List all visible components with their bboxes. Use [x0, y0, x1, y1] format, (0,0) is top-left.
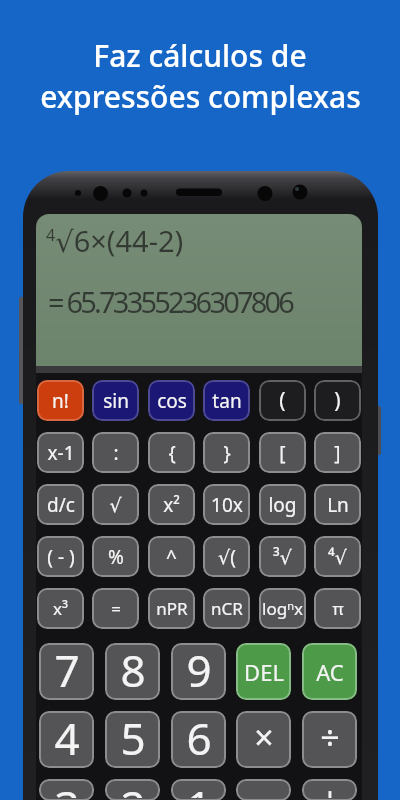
staticText: nCR: [211, 597, 243, 620]
staticText: {: [168, 440, 176, 466]
button[interactable]: {: [148, 432, 195, 473]
staticText: [: [279, 440, 286, 466]
staticText: 7: [54, 643, 80, 697]
staticText: AC: [316, 657, 344, 687]
staticText: :: [113, 440, 119, 466]
button[interactable]: ]: [314, 432, 361, 473]
staticText: 8: [120, 643, 146, 697]
button[interactable]: tan: [203, 380, 250, 421]
staticText: %: [108, 544, 124, 570]
staticText: DEL: [244, 657, 284, 687]
button[interactable]: 7: [39, 643, 94, 700]
button[interactable]: sin: [92, 380, 139, 421]
staticText: ×: [254, 714, 274, 760]
button[interactable]: +: [302, 779, 357, 800]
staticText: 3: [54, 779, 80, 798]
staticText: 5: [120, 711, 146, 765]
staticText: 1: [186, 779, 212, 798]
button[interactable]: [: [259, 432, 306, 473]
staticText: x²: [163, 492, 180, 518]
button[interactable]: AC: [302, 643, 357, 700]
button[interactable]: x²: [148, 484, 195, 525]
button[interactable]: 3: [39, 779, 94, 800]
button[interactable]: ³√: [259, 536, 306, 577]
staticText: π: [332, 597, 344, 620]
staticText: 10x: [211, 492, 243, 518]
button[interactable]: 6: [171, 711, 226, 768]
button[interactable]: √(: [203, 536, 250, 577]
staticText: expressões complexas: [40, 76, 361, 117]
button[interactable]: 9: [171, 643, 226, 700]
button[interactable]: 5: [105, 711, 160, 768]
staticText: tan: [212, 388, 242, 414]
button[interactable]: ( - ): [37, 536, 84, 577]
staticText: (: [279, 386, 286, 415]
staticText: Faz cálculos de: [93, 35, 307, 76]
button[interactable]: nPR: [148, 588, 195, 629]
staticText: nPR: [156, 597, 188, 620]
staticText: √(: [218, 544, 236, 570]
button[interactable]: d/c: [37, 484, 84, 525]
button[interactable]: 8: [105, 643, 160, 700]
staticText: d/c: [47, 492, 75, 518]
staticText: }: [223, 440, 231, 466]
button[interactable]: :: [92, 432, 139, 473]
button[interactable]: 2: [105, 779, 160, 800]
staticText: x³: [53, 597, 68, 620]
staticText: .: [258, 779, 270, 798]
staticText: ( - ): [47, 544, 75, 570]
staticText: 6: [186, 711, 212, 765]
button[interactable]: .: [236, 779, 291, 800]
button[interactable]: 4: [39, 711, 94, 768]
button[interactable]: 1: [171, 779, 226, 800]
button[interactable]: n!: [37, 380, 84, 421]
staticText: +: [320, 779, 340, 798]
button[interactable]: }: [203, 432, 250, 473]
staticText: ]: [334, 440, 341, 466]
button[interactable]: √: [92, 484, 139, 525]
staticText: 4√6×(44-2): [46, 221, 184, 260]
button[interactable]: π: [314, 588, 361, 629]
staticText: ^: [166, 544, 177, 570]
staticText: x-1: [47, 440, 75, 466]
staticText: = 65.73355236307806: [48, 282, 293, 321]
button[interactable]: log: [259, 484, 306, 525]
staticText: ³√: [273, 544, 292, 570]
staticText: √: [109, 494, 122, 516]
button[interactable]: 10x: [203, 484, 250, 525]
button[interactable]: DEL: [236, 643, 291, 700]
staticText: cos: [157, 388, 187, 414]
button[interactable]: x³: [37, 588, 84, 629]
staticText: logⁿx: [262, 597, 303, 620]
staticText: ): [334, 386, 341, 415]
staticText: 9: [186, 643, 212, 697]
button[interactable]: ): [314, 380, 361, 421]
staticText: ÷: [320, 714, 340, 760]
staticText: log: [268, 492, 297, 518]
button[interactable]: ×: [236, 711, 291, 768]
button[interactable]: Ln: [314, 484, 361, 525]
button[interactable]: ÷: [302, 711, 357, 768]
staticText: n!: [52, 388, 69, 414]
staticText: Ln: [327, 492, 349, 518]
button[interactable]: x-1: [37, 432, 84, 473]
button[interactable]: logⁿx: [259, 588, 306, 629]
button[interactable]: %: [92, 536, 139, 577]
button[interactable]: cos: [148, 380, 195, 421]
button[interactable]: ⁴√: [314, 536, 361, 577]
button[interactable]: =: [92, 588, 139, 629]
staticText: ⁴√: [328, 544, 347, 570]
staticText: 2: [120, 779, 146, 798]
button[interactable]: (: [259, 380, 306, 421]
button[interactable]: nCR: [203, 588, 250, 629]
button[interactable]: ^: [148, 536, 195, 577]
staticText: 4: [54, 711, 80, 765]
staticText: sin: [103, 388, 129, 414]
staticText: =: [111, 597, 121, 620]
